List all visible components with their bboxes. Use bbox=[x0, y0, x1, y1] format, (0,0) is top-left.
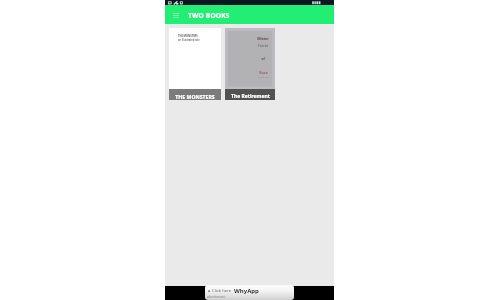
staticText: THE MONSTERS bbox=[178, 34, 198, 38]
staticText: an illustrated tale bbox=[178, 38, 200, 42]
staticText: Rose bbox=[259, 70, 268, 75]
staticText: ● bbox=[208, 290, 211, 293]
button[interactable]: Open navigation menu bbox=[169, 8, 183, 22]
button[interactable]: THE MONSTERS bbox=[169, 28, 221, 100]
staticText: of bbox=[261, 57, 265, 61]
staticText: WhyApp bbox=[234, 287, 259, 295]
staticText: Click here bbox=[212, 288, 232, 294]
staticText: THE MONSTERS bbox=[175, 93, 215, 100]
staticText: anthology bbox=[258, 76, 269, 79]
button[interactable]: Mister bbox=[225, 28, 275, 100]
button[interactable]: ● bbox=[205, 285, 294, 300]
staticText: Mister bbox=[257, 36, 269, 41]
staticText: Portrait bbox=[258, 44, 268, 48]
staticText: The Retirement bbox=[231, 93, 270, 100]
staticText: TWO BOOKS bbox=[188, 11, 230, 20]
staticText: advertisement bbox=[207, 295, 225, 299]
